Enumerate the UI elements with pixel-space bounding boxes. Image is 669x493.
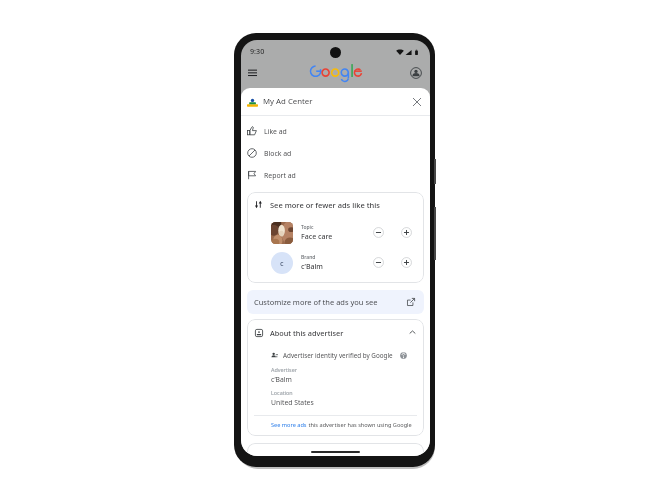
staticText: Topic [301, 224, 314, 231]
staticText: c’Balm [271, 375, 292, 384]
staticText: About this advertiser [270, 328, 344, 338]
button[interactable]: Account [408, 66, 423, 81]
staticText: Block ad [264, 149, 292, 158]
button[interactable]: Fewer ads like this [373, 227, 384, 238]
staticText: 9:30 [250, 46, 265, 56]
staticText: Like ad [264, 127, 287, 136]
staticText: this advertiser has shown using Google [307, 421, 412, 429]
staticText: Brand [301, 254, 316, 261]
button[interactable]: Customize more of the ads you see [247, 290, 424, 314]
button[interactable]: Like ad [241, 120, 430, 142]
button[interactable]: Fewer ads like this [373, 257, 384, 268]
staticText: See more or fewer ads like this [270, 200, 380, 210]
staticText: c [280, 258, 284, 268]
staticText: Advertiser identity verified by Google [283, 351, 393, 360]
staticText: Face care [301, 232, 333, 242]
staticText: c’Balm [301, 262, 323, 272]
staticText: Report ad [264, 171, 296, 180]
button[interactable]: Block ad [241, 142, 430, 164]
button[interactable]: Help [399, 351, 408, 360]
button[interactable]: More ads like this [401, 227, 412, 238]
staticText: Advertiser [271, 366, 297, 373]
staticText: Customize more of the ads you see [254, 297, 378, 307]
button[interactable]: About this advertiser [255, 319, 416, 346]
button[interactable]: More ads like this [401, 257, 412, 268]
button[interactable]: Report ad [241, 164, 430, 186]
button[interactable]: See more ads [271, 421, 307, 429]
button[interactable]: Close [410, 95, 424, 109]
staticText: United States [271, 398, 314, 407]
staticText: Location [271, 389, 293, 396]
staticText: My Ad Center [263, 96, 313, 107]
button[interactable]: Menu [245, 66, 260, 81]
